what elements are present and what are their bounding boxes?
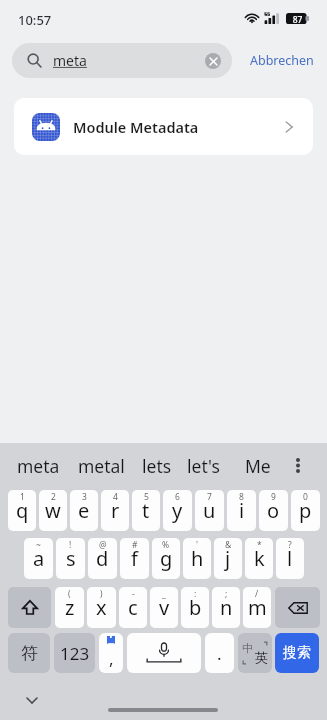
button[interactable]: Switch language (238, 633, 272, 673)
staticText: 英 (255, 649, 268, 665)
button[interactable]: Shift (8, 587, 51, 628)
staticText: ~ (36, 539, 41, 551)
staticText: & (225, 539, 232, 551)
staticText: Men (245, 454, 273, 478)
button[interactable]: ( (55, 587, 84, 628)
staticText: 7 (207, 491, 212, 503)
staticText: _ (162, 588, 166, 600)
button[interactable]: ? (276, 538, 304, 579)
staticText: . (217, 642, 222, 665)
staticText: x (96, 594, 107, 621)
button[interactable]: Backspace (275, 587, 320, 628)
button[interactable]: 3 (70, 490, 98, 531)
button[interactable]: metal (78, 454, 125, 478)
button[interactable]: 2 (39, 490, 67, 531)
staticText: meta (53, 51, 194, 70)
button[interactable]: 9 (259, 490, 288, 531)
button[interactable]: 7 (195, 490, 224, 531)
staticText: ; (225, 588, 228, 600)
button[interactable]: ! (56, 538, 85, 579)
button[interactable]: meta (17, 454, 60, 478)
button[interactable]: lets (142, 454, 172, 478)
staticText: 87 (290, 14, 305, 26)
staticText: , (109, 647, 114, 670)
button[interactable]: % (152, 538, 180, 579)
button[interactable]: ; (212, 587, 240, 628)
staticText: 符 (21, 643, 38, 664)
staticText: r (111, 497, 120, 524)
button[interactable]: Clear search (194, 44, 232, 78)
staticText: 9 (271, 491, 276, 503)
staticText: z (65, 594, 75, 621)
button[interactable]: Comma (99, 633, 123, 673)
button[interactable]: ' (183, 538, 211, 579)
button[interactable]: : (181, 587, 209, 628)
button[interactable]: meta (12, 43, 232, 78)
button[interactable]: * (245, 538, 273, 579)
staticText: meta (17, 454, 60, 478)
button[interactable]: Space (127, 633, 201, 673)
staticText: v (159, 594, 170, 621)
staticText: q (16, 497, 29, 524)
staticText: ) (100, 588, 103, 600)
staticText: * (257, 539, 262, 551)
staticText: lets (142, 454, 172, 478)
staticText: e (78, 497, 90, 524)
staticText: ' (196, 539, 198, 551)
staticText: 0 (303, 491, 308, 503)
staticText: i (239, 497, 245, 524)
staticText: w (45, 497, 61, 524)
staticText: 3 (82, 491, 87, 503)
button[interactable]: 4 (101, 490, 129, 531)
staticText: k (254, 545, 265, 572)
staticText: metal (78, 454, 125, 478)
button[interactable]: More suggestions (285, 443, 311, 488)
button[interactable]: ) (87, 587, 116, 628)
button[interactable]: let's (187, 454, 220, 478)
button[interactable]: # (120, 538, 149, 579)
staticText: 1 (20, 491, 25, 503)
staticText: o (267, 497, 280, 524)
staticText: u (203, 497, 216, 524)
staticText: c (128, 594, 138, 621)
staticText: g (160, 545, 173, 572)
staticText: ( (68, 588, 71, 600)
staticText: ? (288, 539, 292, 551)
button[interactable]: Abbrechen (240, 43, 324, 78)
staticText: y (172, 497, 183, 524)
button[interactable]: . (205, 633, 234, 673)
staticText: : (194, 588, 197, 600)
staticText: t (142, 497, 150, 524)
staticText: f (131, 545, 138, 572)
button[interactable]: 符 (8, 633, 50, 673)
button[interactable]: 6 (163, 490, 192, 531)
button[interactable]: 123 (54, 633, 95, 673)
button[interactable]: - (119, 587, 147, 628)
button[interactable]: 0 (291, 490, 320, 531)
staticText: l (287, 545, 293, 572)
button[interactable]: ~ (24, 538, 53, 579)
staticText: / (255, 588, 259, 600)
staticText: p (299, 497, 312, 524)
staticText: 5 (144, 491, 149, 503)
staticText: a (33, 545, 45, 572)
staticText: 4 (113, 491, 118, 503)
button[interactable]: & (214, 538, 242, 579)
staticText: h (191, 545, 204, 572)
button[interactable]: _ (150, 587, 178, 628)
staticText: 123 (60, 642, 90, 665)
button[interactable]: Men (245, 454, 273, 478)
button[interactable]: 5 (132, 490, 160, 531)
staticText: 6 (175, 491, 180, 503)
button[interactable]: 8 (227, 490, 256, 531)
staticText: s (66, 545, 76, 572)
button[interactable]: Module Metadata (14, 98, 313, 155)
button[interactable]: Hide keyboard (21, 689, 43, 711)
button[interactable]: / (243, 587, 271, 628)
staticText: 2 (51, 491, 56, 503)
staticText: # (132, 539, 138, 551)
button[interactable]: @ (88, 538, 117, 579)
button[interactable]: 搜索 (275, 633, 319, 673)
button[interactable]: 1 (8, 490, 36, 531)
staticText: m (248, 594, 267, 621)
